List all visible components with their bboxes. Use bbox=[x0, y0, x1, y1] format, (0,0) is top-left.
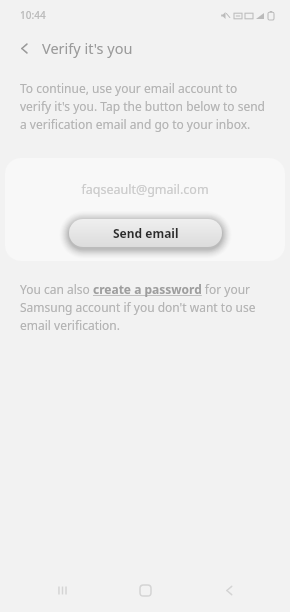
button[interactable]: Send email bbox=[69, 219, 222, 247]
staticText: 10:44 bbox=[20, 8, 46, 22]
staticText: Verify it's you bbox=[42, 38, 133, 58]
staticText: To continue, use your email account to v… bbox=[20, 80, 268, 132]
button[interactable]: Home bbox=[123, 568, 167, 612]
button[interactable]: Recents bbox=[40, 568, 84, 612]
staticText: faqseault@gmail.com bbox=[81, 181, 209, 198]
staticText: Send email bbox=[113, 225, 179, 241]
button[interactable]: You can also create a password for your … bbox=[20, 281, 268, 333]
button[interactable]: Back bbox=[10, 34, 38, 62]
